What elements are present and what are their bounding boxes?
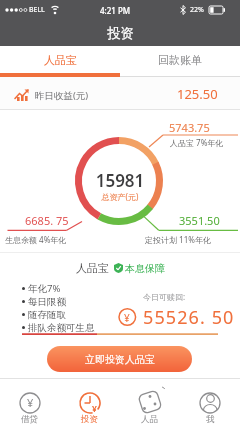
staticText: 今日可赎回: bbox=[143, 291, 186, 302]
staticText: 随存随取 bbox=[28, 309, 66, 321]
staticText: 22% bbox=[190, 5, 204, 15]
staticText: 定投计划 11%年化 bbox=[145, 234, 211, 245]
staticText: 年化7% bbox=[28, 282, 61, 295]
staticText: 回款账单 bbox=[158, 53, 202, 67]
staticText: 人品宝 7%年化 bbox=[170, 137, 224, 148]
staticText: 借贷 bbox=[21, 414, 38, 425]
button[interactable]: 人品宝 bbox=[0, 46, 120, 77]
staticText: 投资 bbox=[81, 414, 98, 425]
staticText: BELL bbox=[29, 5, 45, 15]
staticText: 人品宝 bbox=[76, 261, 109, 275]
staticText: 昨日收益(元) bbox=[35, 89, 89, 102]
button[interactable]: ¥ bbox=[118, 304, 240, 328]
staticText: ¥ bbox=[27, 395, 34, 410]
staticText: 125.50 bbox=[177, 85, 218, 103]
staticText: 人品 bbox=[141, 414, 158, 425]
staticText: 本息保障 bbox=[125, 262, 165, 275]
button[interactable]: 立即投资人品宝 bbox=[47, 346, 192, 372]
staticText: 人品宝 bbox=[44, 53, 77, 67]
staticText: 每日限额 bbox=[28, 296, 66, 308]
staticText: 3551.50 bbox=[179, 213, 220, 228]
staticText: 6685. 75 bbox=[25, 213, 69, 228]
button[interactable]: 昨日收益(元) bbox=[0, 77, 240, 110]
staticText: 生息余额 4%年化 bbox=[5, 234, 67, 245]
staticText: 总资产(元) bbox=[0, 191, 240, 202]
staticText: 5743.75 bbox=[169, 120, 210, 135]
staticText: ¥ bbox=[92, 403, 97, 415]
staticText: ¥ bbox=[124, 311, 130, 325]
staticText: 55526. 50 bbox=[143, 305, 235, 329]
button[interactable]: ¥ bbox=[60, 378, 120, 426]
staticText: 4:21 PM bbox=[100, 5, 131, 16]
staticText: 立即投资人品宝 bbox=[85, 353, 155, 366]
staticText: 我 bbox=[206, 414, 215, 425]
button[interactable]: 我 bbox=[180, 378, 240, 426]
staticText: 投资 bbox=[107, 25, 134, 42]
button[interactable]: 回款账单 bbox=[120, 46, 240, 77]
staticText: 排队余额可生息 bbox=[28, 322, 95, 334]
button[interactable]: 人品 bbox=[120, 378, 180, 426]
button[interactable]: ¥ bbox=[0, 378, 60, 426]
staticText: 15981 bbox=[0, 169, 240, 192]
